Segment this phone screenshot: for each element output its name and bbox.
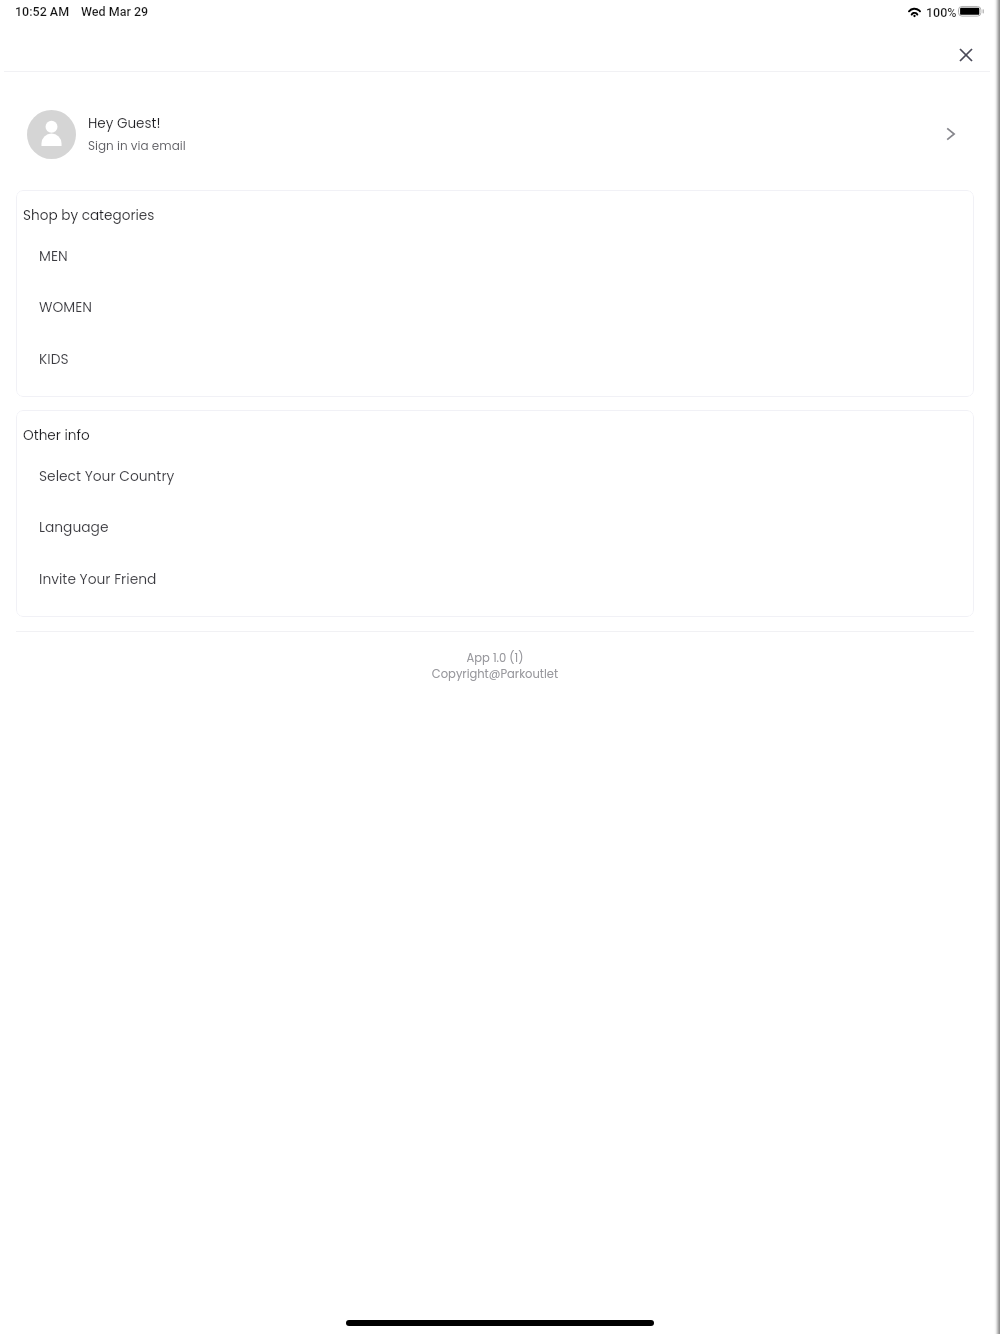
staticText: 10:52 AM bbox=[15, 4, 70, 19]
staticText: Copyright@Parkoutlet bbox=[0, 666, 990, 682]
staticText: Hey Guest! bbox=[88, 114, 161, 133]
staticText: Wed Mar 29 bbox=[81, 4, 149, 19]
button[interactable]: WOMEN bbox=[16, 281, 974, 333]
button[interactable]: Open profile bbox=[933, 116, 969, 152]
staticText: WOMEN bbox=[39, 298, 92, 317]
staticText: Other info bbox=[23, 426, 90, 445]
staticText: Sign in via email bbox=[88, 137, 186, 154]
button[interactable]: Language bbox=[16, 501, 974, 553]
staticText: Shop by categories bbox=[23, 206, 155, 225]
staticText: KIDS bbox=[39, 350, 69, 369]
staticText: Language bbox=[39, 518, 109, 537]
button[interactable]: Invite Your Friend bbox=[16, 553, 974, 605]
staticText: Select Your Country bbox=[39, 467, 175, 486]
staticText: 100% bbox=[926, 5, 957, 20]
button[interactable]: Select Your Country bbox=[16, 450, 974, 502]
staticText: App 1.0 (1) bbox=[0, 650, 990, 666]
button[interactable]: Hey Guest! bbox=[0, 72, 990, 190]
button[interactable]: KIDS bbox=[16, 333, 974, 385]
button[interactable]: Close bbox=[949, 38, 983, 72]
staticText: MEN bbox=[39, 247, 68, 266]
button[interactable]: MEN bbox=[16, 230, 974, 282]
staticText: Invite Your Friend bbox=[39, 570, 157, 589]
